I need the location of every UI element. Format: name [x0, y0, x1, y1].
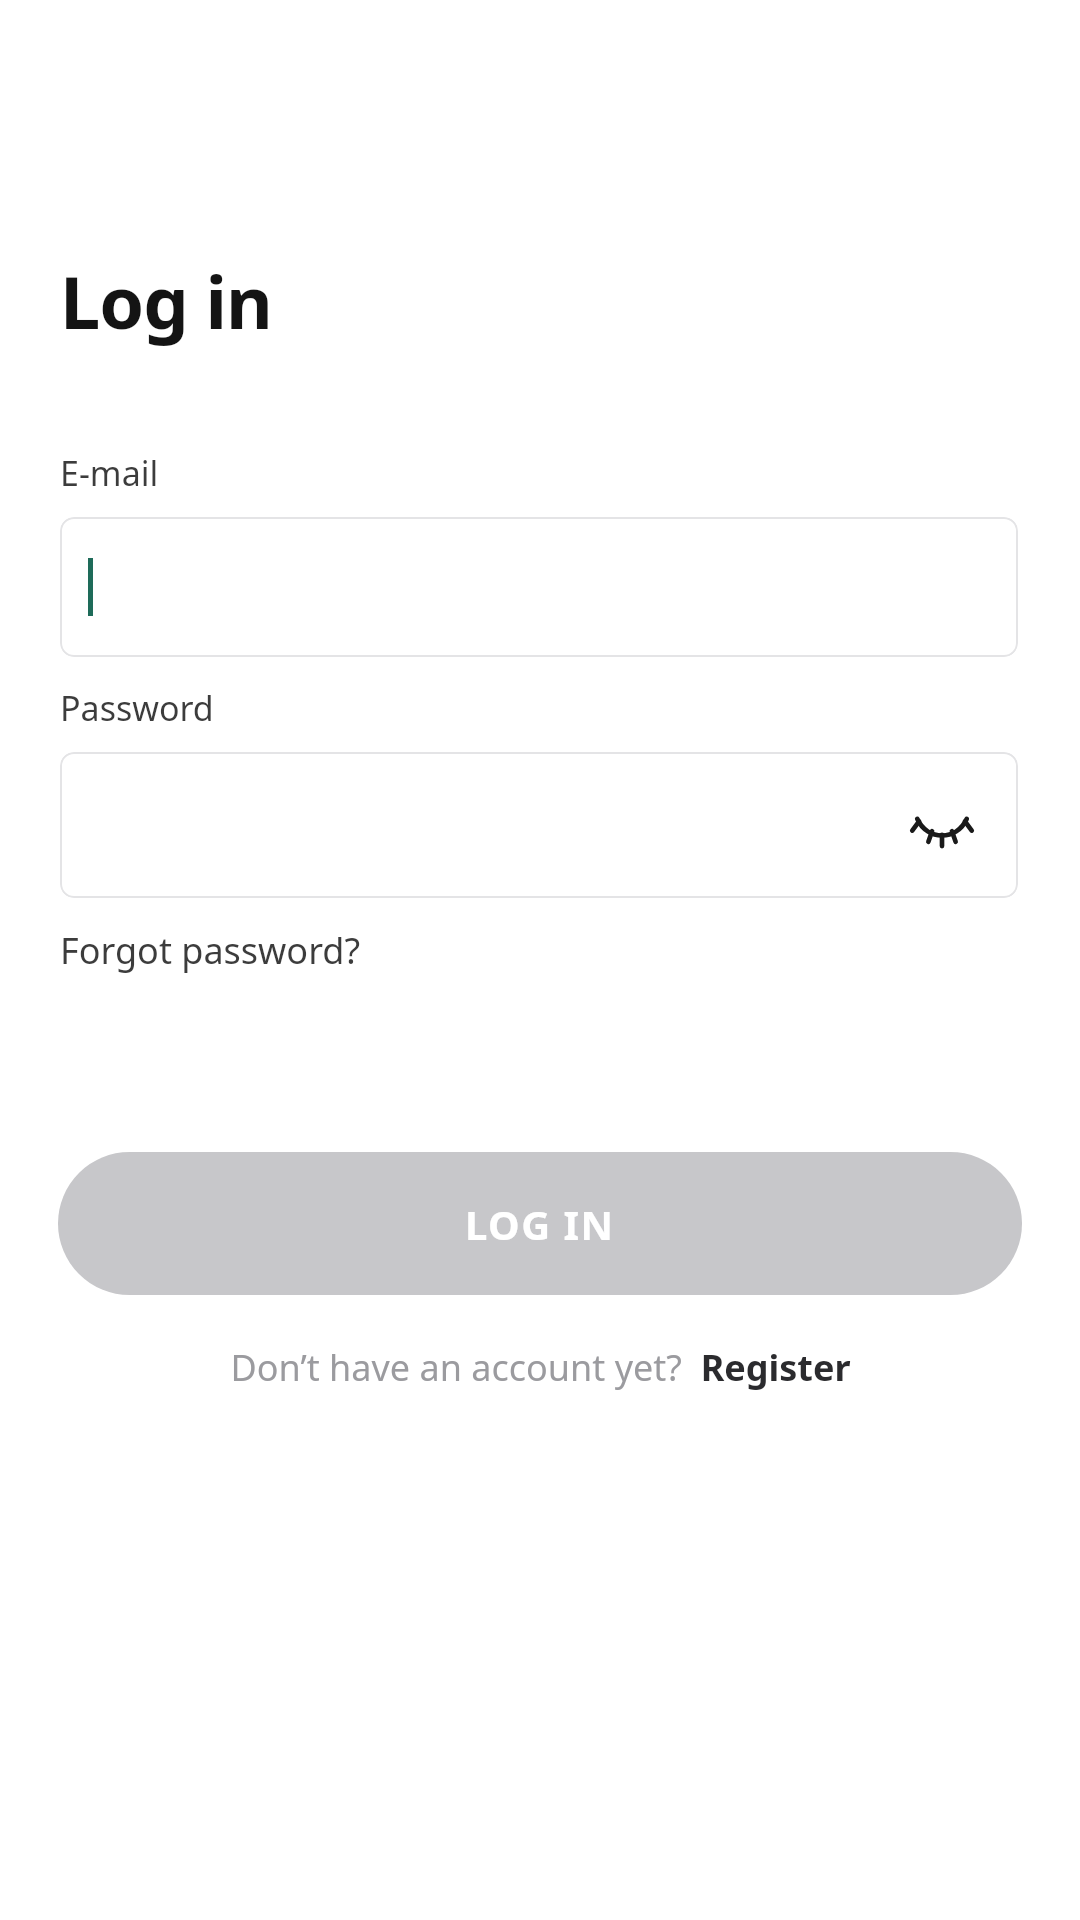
staticText: LOG IN	[465, 1197, 615, 1251]
staticText: Don’t have an account yet? Register	[230, 1343, 851, 1392]
button[interactable]: LOG IN	[58, 1152, 1022, 1295]
button[interactable]: Don’t have an account yet? Register	[222, 1339, 859, 1396]
staticText: E-mail	[60, 450, 159, 496]
button[interactable]: Forgot password?	[56, 924, 365, 977]
button[interactable]: Show password	[906, 789, 978, 861]
button[interactable]	[60, 517, 1018, 657]
staticText: Password	[60, 685, 214, 731]
staticText: Forgot password?	[60, 926, 361, 975]
staticText: Log in	[60, 252, 272, 350]
